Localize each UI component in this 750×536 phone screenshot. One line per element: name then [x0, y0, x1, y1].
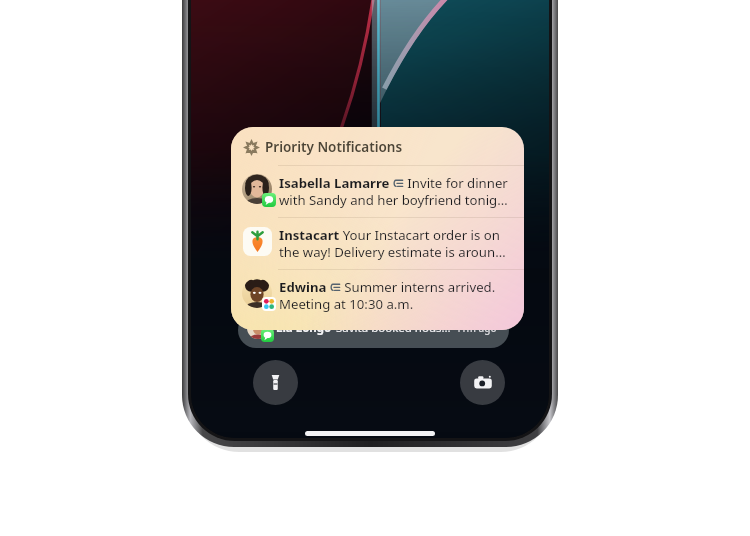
- staticText: Instacart Your Instacart order is on the…: [279, 226, 511, 261]
- button[interactable]: Camera: [460, 360, 505, 405]
- button[interactable]: Flashlight: [253, 360, 298, 405]
- button[interactable]: Instacart Your Instacart order is on the…: [242, 226, 511, 261]
- button[interactable]: Edwina * Summer interns arrived. Meeting…: [242, 278, 511, 313]
- staticText: Priority Notifications: [265, 138, 403, 156]
- staticText: Edwina * Summer interns arrived. Meeting…: [279, 278, 511, 313]
- button[interactable]: Lia Longo: [238, 312, 509, 348]
- staticText: Isabella Lamarre * Invite for dinner wit…: [279, 174, 511, 209]
- staticText: 41m ago: [455, 321, 497, 335]
- button[interactable]: Priority Notifications: [231, 127, 524, 330]
- staticText: Lia Longo: [276, 320, 332, 336]
- staticText: Savita booked house…: [336, 320, 455, 336]
- button[interactable]: Isabella Lamarre * Invite for dinner wit…: [242, 174, 511, 209]
